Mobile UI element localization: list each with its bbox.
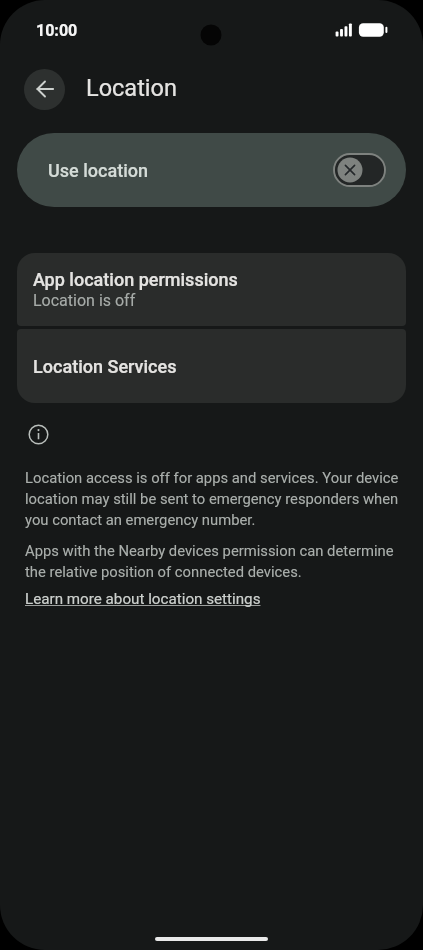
staticText: 10:00 (36, 21, 78, 40)
button[interactable]: Use location (17, 133, 406, 207)
staticText: App location permissions (33, 269, 238, 290)
staticText: Apps with the Nearby devices permission … (25, 542, 401, 580)
button[interactable]: Use location (334, 154, 385, 186)
button[interactable]: App location permissions (17, 253, 406, 326)
staticText: Location is off (33, 291, 136, 310)
staticText: Use location (48, 160, 334, 181)
button[interactable]: Back (24, 69, 65, 110)
staticText: Location access is off for apps and serv… (25, 469, 401, 528)
staticText: Location (86, 74, 177, 102)
staticText: Learn more about location settings (25, 590, 261, 608)
button[interactable]: Location Services (17, 329, 406, 403)
button[interactable]: Learn more about location settings (25, 590, 261, 608)
staticText: Location Services (33, 356, 177, 377)
